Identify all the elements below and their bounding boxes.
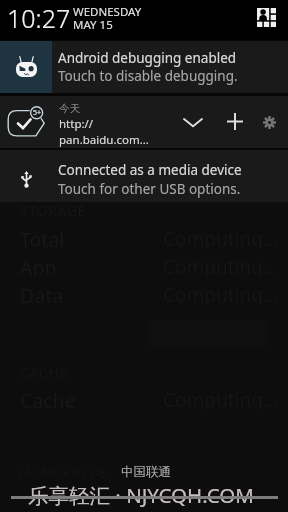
staticText: 乐享轻汇 · NJYCQH.COM [28,481,254,509]
button[interactable] [0,96,288,148]
staticText: 今天 [59,102,80,115]
button[interactable] [0,150,288,202]
button[interactable]: Quick settings [257,8,276,27]
staticText: Android debugging enabled [58,49,237,67]
staticText: Touch to disable debugging. [58,67,238,85]
staticText: Connected as a media device [58,161,242,179]
staticText: Data [20,282,64,304]
button[interactable]: Android debugging enabled [0,41,288,93]
staticText: 中国联通 [121,464,171,480]
staticText: http:// [59,116,94,132]
staticText: WEDNESDAY [73,4,142,20]
staticText: MAY 15 [73,17,113,33]
staticText: 10:27 [7,1,71,35]
staticText: Cache [20,387,76,409]
staticText: STORAGE [20,200,86,220]
staticText: pan.baidu.com… [59,132,149,148]
button[interactable]: Expand notification [179,108,207,136]
staticText: Touch for other USB options. [58,180,241,198]
button[interactable]: Add [221,107,249,135]
button[interactable]: Settings [255,108,283,136]
staticText: Total [20,226,65,248]
staticText: 5+ [33,108,42,118]
staticText: App [20,254,57,276]
